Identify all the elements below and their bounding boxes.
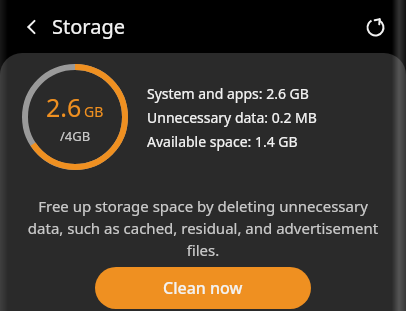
staticText: System and apps: 2.6 GB (147, 84, 309, 103)
button[interactable]: Back (14, 9, 50, 45)
staticText: Available space: 1.4 GB (147, 132, 298, 151)
staticText: 2.6 (46, 90, 82, 124)
button[interactable]: Refresh (358, 10, 392, 44)
staticText: Storage (52, 13, 125, 40)
staticText: GB (84, 102, 104, 121)
staticText: /4GB (60, 127, 91, 145)
staticText: Clean now (163, 277, 243, 299)
button[interactable]: Clean now (95, 267, 311, 309)
staticText: Unnecessary data: 0.2 MB (147, 108, 317, 127)
staticText: Free up storage space by deleting unnece… (22, 196, 384, 261)
